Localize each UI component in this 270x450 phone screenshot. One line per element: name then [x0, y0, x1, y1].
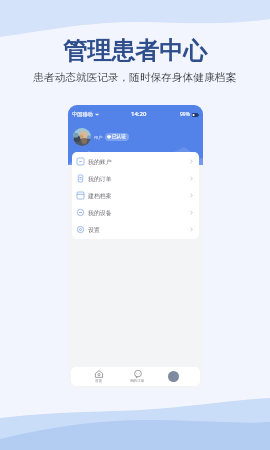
button[interactable]: 我的设备	[72, 204, 199, 221]
button[interactable]: 我的订单	[72, 170, 199, 187]
staticText: 管理患者中心	[63, 36, 207, 66]
button[interactable]: 首页	[92, 369, 106, 385]
button[interactable]: 我的订单	[127, 369, 148, 385]
staticText: 我的账户	[88, 158, 112, 165]
staticText: 首页	[95, 379, 103, 384]
button[interactable]: 个人中心	[168, 371, 179, 382]
staticText: 我的订单	[130, 379, 145, 384]
staticText: 用户	[94, 135, 103, 140]
staticText: 中国移动	[72, 111, 93, 118]
staticText: 设置	[88, 226, 100, 233]
staticText: 我的订单	[88, 175, 112, 182]
staticText: 我的设备	[88, 209, 112, 216]
staticText: 14:20	[131, 110, 147, 118]
staticText: 建档档案	[88, 192, 112, 199]
staticText: 患者动态就医记录，随时保存身体健康档案	[33, 71, 237, 84]
button[interactable]: 我的账户	[72, 153, 199, 170]
staticText: 已认证	[112, 134, 126, 140]
button[interactable]: 设置	[72, 221, 199, 238]
staticText: 99%	[180, 111, 190, 118]
button[interactable]: 建档档案	[72, 187, 199, 204]
